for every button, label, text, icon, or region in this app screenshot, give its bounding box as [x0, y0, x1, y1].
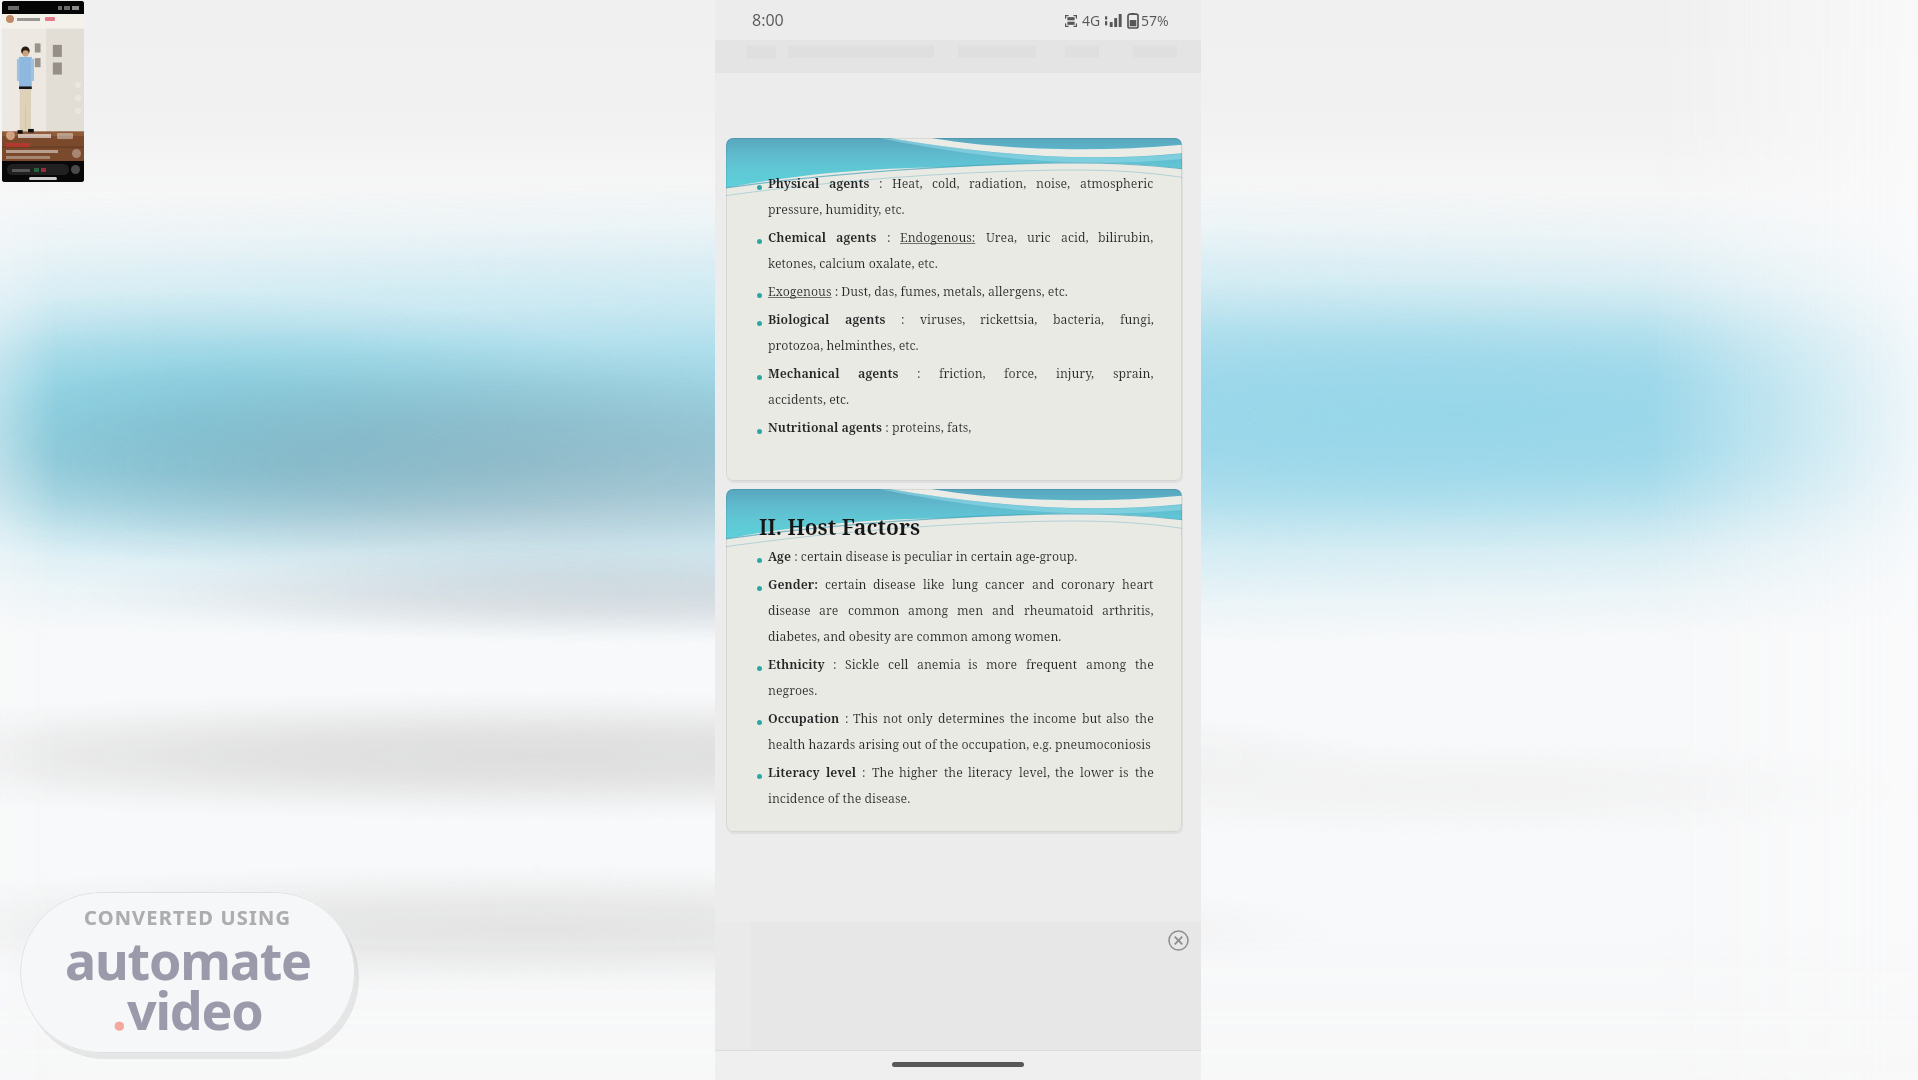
staticText: II. Host Factors [759, 513, 920, 542]
staticText: Physical [768, 175, 820, 192]
staticText: agents [829, 175, 870, 192]
staticText: coronary [1061, 576, 1115, 593]
staticText: the [1055, 764, 1074, 781]
staticText: injury, [1056, 365, 1095, 382]
staticText: accidents, etc. [768, 391, 1154, 417]
staticText: : [862, 764, 866, 781]
staticText: is [968, 656, 978, 673]
staticText: level [826, 764, 857, 781]
staticText: lower [1080, 764, 1114, 781]
staticText: cell [888, 656, 909, 673]
staticText: bacteria, [1053, 311, 1105, 328]
staticText: : [887, 229, 891, 246]
staticText: Biological [768, 311, 830, 328]
staticText: Occupation [768, 710, 840, 727]
staticText: level, [1019, 764, 1050, 781]
staticText: Ethnicity [768, 656, 825, 673]
staticText: CONVERTED USING [84, 904, 292, 931]
staticText: ketones, calcium oxalate, etc. [768, 255, 1154, 281]
staticText: among [908, 602, 949, 619]
staticText: agents [845, 311, 886, 328]
staticText: friction, [939, 365, 986, 382]
staticText: like [923, 576, 945, 593]
staticText: and [992, 602, 1015, 619]
staticText: common [848, 602, 900, 619]
staticText: Literacy [768, 764, 820, 781]
staticText: the [1135, 656, 1154, 673]
staticText: more [986, 656, 1018, 673]
staticText: : [833, 656, 837, 673]
staticText: The [872, 764, 894, 781]
staticText: fungi, [1120, 311, 1154, 328]
staticText: 8:00 [752, 9, 784, 31]
staticText: among [1086, 656, 1127, 673]
staticText: cancer [985, 576, 1025, 593]
button[interactable] [2, 1, 84, 182]
staticText: heart [1122, 576, 1154, 593]
staticText: pressure, humidity, etc. [768, 201, 1154, 227]
staticText: . [112, 974, 127, 1045]
button[interactable]: Physical [726, 138, 1182, 481]
staticText: bilirubin, [1098, 229, 1154, 246]
staticText: Gender: [768, 576, 818, 593]
staticText: also [1106, 710, 1130, 727]
staticText: but [1082, 710, 1102, 727]
button[interactable]: II. Host Factors [726, 489, 1182, 832]
staticText: lung [952, 576, 979, 593]
staticText: Chemical [768, 229, 827, 246]
staticText: arthritis, [1102, 602, 1154, 619]
staticText: Age : certain disease is peculiar in cer… [768, 548, 1154, 574]
staticText: radiation, [969, 175, 1027, 192]
staticText: the [1135, 764, 1154, 781]
staticText: automate [65, 924, 311, 995]
staticText: rheumatoid [1024, 602, 1094, 619]
staticText: Mechanical [768, 365, 840, 382]
staticText: protozoa, helminthes, etc. [768, 337, 1154, 363]
staticText: health hazards arising out of the occupa… [768, 736, 1154, 762]
staticText: noise, [1036, 175, 1071, 192]
staticText: is [1119, 764, 1129, 781]
staticText: video [127, 974, 263, 1045]
staticText: higher [899, 764, 938, 781]
staticText: agents [836, 229, 877, 246]
staticText: disease [873, 576, 916, 593]
staticText: not [883, 710, 903, 727]
staticText: only [907, 710, 933, 727]
button[interactable]: Close ad [1168, 930, 1189, 951]
staticText: force, [1004, 365, 1038, 382]
staticText: Urea, [986, 229, 1018, 246]
staticText: determines [938, 710, 1005, 727]
staticText: atmospheric [1080, 175, 1154, 192]
staticText: rickettsia, [980, 311, 1038, 328]
staticText: the [1135, 710, 1154, 727]
staticText: Endogenous: [900, 229, 976, 246]
staticText: Sickle [845, 656, 880, 673]
staticText: cold, [932, 175, 960, 192]
staticText: 57% [1141, 11, 1169, 30]
staticText: are [819, 602, 839, 619]
staticText: and [1032, 576, 1055, 593]
staticText: incidence of the disease. [768, 790, 1154, 816]
staticText: : [901, 311, 905, 328]
staticText: literacy [968, 764, 1013, 781]
staticText: frequent [1026, 656, 1078, 673]
staticText: Nutritional agents : proteins, fats, [768, 419, 1154, 445]
staticText: uric [1027, 229, 1051, 246]
staticText: : [879, 175, 883, 192]
staticText: negroes. [768, 682, 1154, 708]
staticText: This [853, 710, 878, 727]
staticText: anemia [917, 656, 961, 673]
staticText: agents [858, 365, 899, 382]
staticText: Heat, [892, 175, 923, 192]
staticText: : [845, 710, 849, 727]
staticText: certain [825, 576, 867, 593]
staticText: the [944, 764, 963, 781]
staticText: men [957, 602, 984, 619]
staticText: disease [768, 602, 811, 619]
staticText: Exogenous : Dust, das, fumes, metals, al… [768, 283, 1154, 309]
staticText: the [1010, 710, 1029, 727]
staticText: 4G [1082, 11, 1101, 30]
staticText: viruses, [920, 311, 966, 328]
staticText: income [1033, 710, 1077, 727]
staticText: : [917, 365, 921, 382]
